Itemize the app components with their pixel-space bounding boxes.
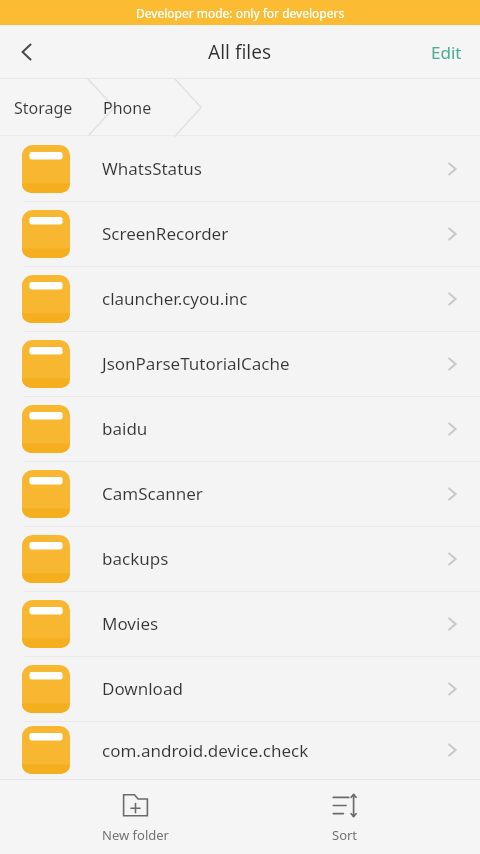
staticText: New folder bbox=[102, 826, 169, 844]
button[interactable]: Phone bbox=[93, 79, 162, 136]
staticText: Download bbox=[102, 677, 183, 700]
staticText: All files bbox=[208, 39, 272, 65]
button[interactable]: WhatsStatus bbox=[0, 136, 480, 201]
button[interactable]: JsonParseTutorialCache bbox=[0, 331, 480, 396]
button[interactable]: baidu bbox=[0, 396, 480, 461]
staticText: Developer mode: only for developers bbox=[136, 5, 345, 21]
staticText: backups bbox=[102, 547, 169, 570]
staticText: CamScanner bbox=[102, 482, 203, 505]
button[interactable]: Movies bbox=[0, 591, 480, 656]
staticText: Edit bbox=[431, 41, 462, 64]
button[interactable]: backups bbox=[0, 526, 480, 591]
staticText: baidu bbox=[102, 417, 148, 440]
button[interactable]: Sort bbox=[270, 782, 420, 852]
staticText: clauncher.cyou.inc bbox=[102, 287, 248, 310]
staticText: Phone bbox=[103, 97, 152, 119]
button[interactable]: Download bbox=[0, 656, 480, 721]
staticText: WhatsStatus bbox=[102, 157, 202, 180]
button[interactable]: Storage bbox=[0, 79, 87, 136]
staticText: Storage bbox=[14, 97, 73, 119]
staticText: Sort bbox=[332, 826, 358, 844]
staticText: com.android.device.check bbox=[102, 739, 309, 762]
staticText: JsonParseTutorialCache bbox=[102, 352, 290, 375]
staticText: ScreenRecorder bbox=[102, 222, 229, 245]
button[interactable]: CamScanner bbox=[0, 461, 480, 526]
button[interactable]: com.android.device.check bbox=[0, 721, 480, 779]
button[interactable]: clauncher.cyou.inc bbox=[0, 266, 480, 331]
button[interactable]: Back bbox=[0, 25, 54, 79]
button[interactable]: Edit bbox=[413, 25, 480, 79]
staticText: Movies bbox=[102, 612, 159, 635]
button[interactable]: ScreenRecorder bbox=[0, 201, 480, 266]
button[interactable]: New folder bbox=[60, 782, 210, 852]
